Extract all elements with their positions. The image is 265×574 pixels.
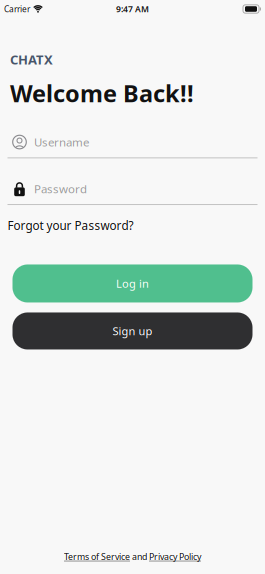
button[interactable]: Log in bbox=[12, 264, 252, 302]
button[interactable]: Terms of Service bbox=[64, 550, 130, 562]
staticText: Privacy Policy bbox=[149, 550, 201, 562]
button[interactable]: Forgot your Password? bbox=[7, 217, 133, 233]
staticText: Log in bbox=[116, 276, 149, 291]
button[interactable]: Username bbox=[0, 134, 265, 150]
staticText: 9:47 AM bbox=[116, 3, 149, 15]
staticText: Sign up bbox=[112, 323, 152, 338]
button[interactable]: Privacy Policy bbox=[149, 550, 201, 562]
staticText: Welcome Back!! bbox=[10, 77, 194, 109]
staticText: Password bbox=[34, 181, 87, 197]
button[interactable]: Password bbox=[0, 181, 265, 197]
staticText: Username bbox=[34, 134, 89, 150]
button[interactable]: Sign up bbox=[12, 312, 252, 349]
staticText: CHATX bbox=[10, 50, 53, 68]
staticText: and bbox=[130, 550, 149, 562]
staticText: Carrier bbox=[4, 3, 30, 15]
staticText: Terms of Service bbox=[64, 550, 130, 562]
staticText: Forgot your Password? bbox=[7, 217, 133, 233]
